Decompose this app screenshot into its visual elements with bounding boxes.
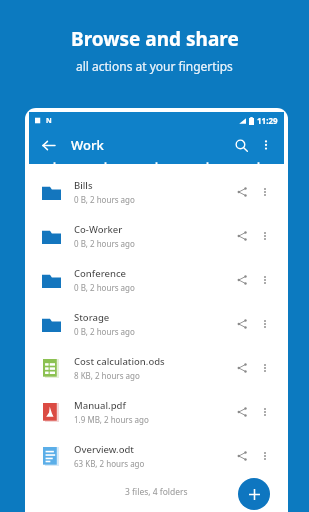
- button[interactable]: Back: [37, 134, 59, 156]
- button[interactable]: More options: [254, 313, 276, 335]
- button[interactable]: Share: [230, 312, 254, 336]
- button[interactable]: More options: [254, 181, 276, 203]
- button[interactable]: More options: [254, 357, 276, 379]
- button[interactable]: Bills: [29, 170, 284, 214]
- staticText: 0 B, 2 hours ago: [74, 282, 135, 293]
- staticText: Conference: [74, 267, 126, 280]
- staticText: 1.9 MB, 2 hours ago: [74, 414, 149, 425]
- staticText: Storage: [74, 311, 110, 324]
- button[interactable]: Overview.odt: [29, 434, 284, 478]
- staticText: Cost calculation.ods: [74, 355, 165, 368]
- button[interactable]: Cost calculation.ods: [29, 346, 284, 390]
- staticText: Browse and share: [71, 26, 239, 52]
- button[interactable]: Storage: [29, 302, 284, 346]
- staticText: all actions at your fingertips: [76, 58, 233, 74]
- staticText: 0 B, 2 hours ago: [74, 326, 135, 337]
- button[interactable]: More options: [254, 269, 276, 291]
- button[interactable]: More options: [256, 135, 276, 155]
- staticText: 11:29: [257, 115, 278, 126]
- button[interactable]: Search: [230, 134, 252, 156]
- button[interactable]: Conference: [29, 258, 284, 302]
- staticText: Manual.pdf: [74, 399, 126, 412]
- button[interactable]: Share: [230, 180, 254, 204]
- button[interactable]: Manual.pdf: [29, 390, 284, 434]
- staticText: 0 B, 2 hours ago: [74, 194, 135, 205]
- button[interactable]: More options: [254, 445, 276, 467]
- button[interactable]: More options: [254, 225, 276, 247]
- button[interactable]: Share: [230, 400, 254, 424]
- staticText: 63 KB, 2 hours ago: [74, 458, 145, 469]
- button[interactable]: Share: [230, 356, 254, 380]
- button[interactable]: Share: [230, 268, 254, 292]
- staticText: 0 B, 2 hours ago: [74, 238, 135, 249]
- staticText: Work: [71, 136, 104, 154]
- button[interactable]: Share: [230, 444, 254, 468]
- staticText: 3 files, 4 folders: [125, 486, 188, 498]
- button[interactable]: Add: [238, 478, 270, 510]
- staticText: Co-Worker: [74, 223, 123, 236]
- button[interactable]: Share: [230, 224, 254, 248]
- button[interactable]: Co-Worker: [29, 214, 284, 258]
- staticText: Overview.odt: [74, 443, 134, 456]
- staticText: 8 KB, 2 hours ago: [74, 370, 140, 381]
- button[interactable]: More options: [254, 401, 276, 423]
- staticText: Bills: [74, 179, 93, 192]
- staticText: N: [46, 116, 52, 126]
